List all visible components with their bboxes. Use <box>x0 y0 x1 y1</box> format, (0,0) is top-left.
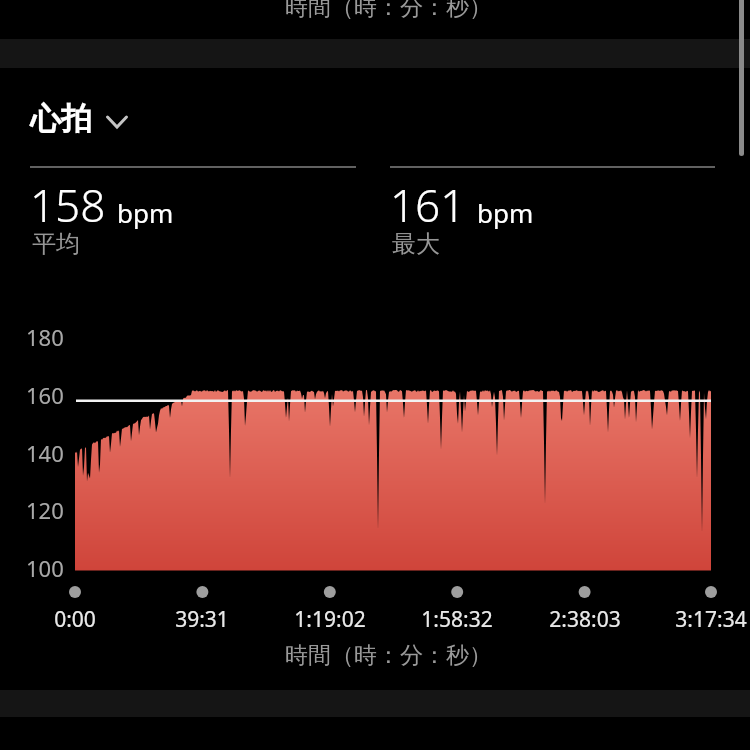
staticText: 3:17:34 <box>675 605 747 634</box>
button[interactable]: 心拍 <box>30 99 128 138</box>
staticText: 平均 <box>32 229 80 259</box>
staticText: 120 <box>26 495 64 525</box>
staticText: 39:31 <box>175 605 229 634</box>
staticText: bpm <box>477 195 534 230</box>
staticText: 2:38:03 <box>549 605 621 634</box>
staticText: bpm <box>117 195 174 230</box>
staticText: 160 <box>26 380 64 410</box>
staticText: 180 <box>26 322 64 352</box>
staticText: 0:00 <box>54 605 96 634</box>
staticText: 最大 <box>392 229 440 259</box>
staticText: 158 <box>30 175 106 235</box>
staticText: 時間（時：分：秒） <box>285 0 492 22</box>
staticText: 161 <box>390 175 466 235</box>
staticText: 心拍 <box>30 99 92 138</box>
staticText: 1:58:32 <box>421 605 493 634</box>
staticText: 140 <box>26 438 64 468</box>
staticText: 時間（時：分：秒） <box>285 641 492 670</box>
staticText: 100 <box>26 553 64 583</box>
staticText: 1:19:02 <box>294 605 366 634</box>
